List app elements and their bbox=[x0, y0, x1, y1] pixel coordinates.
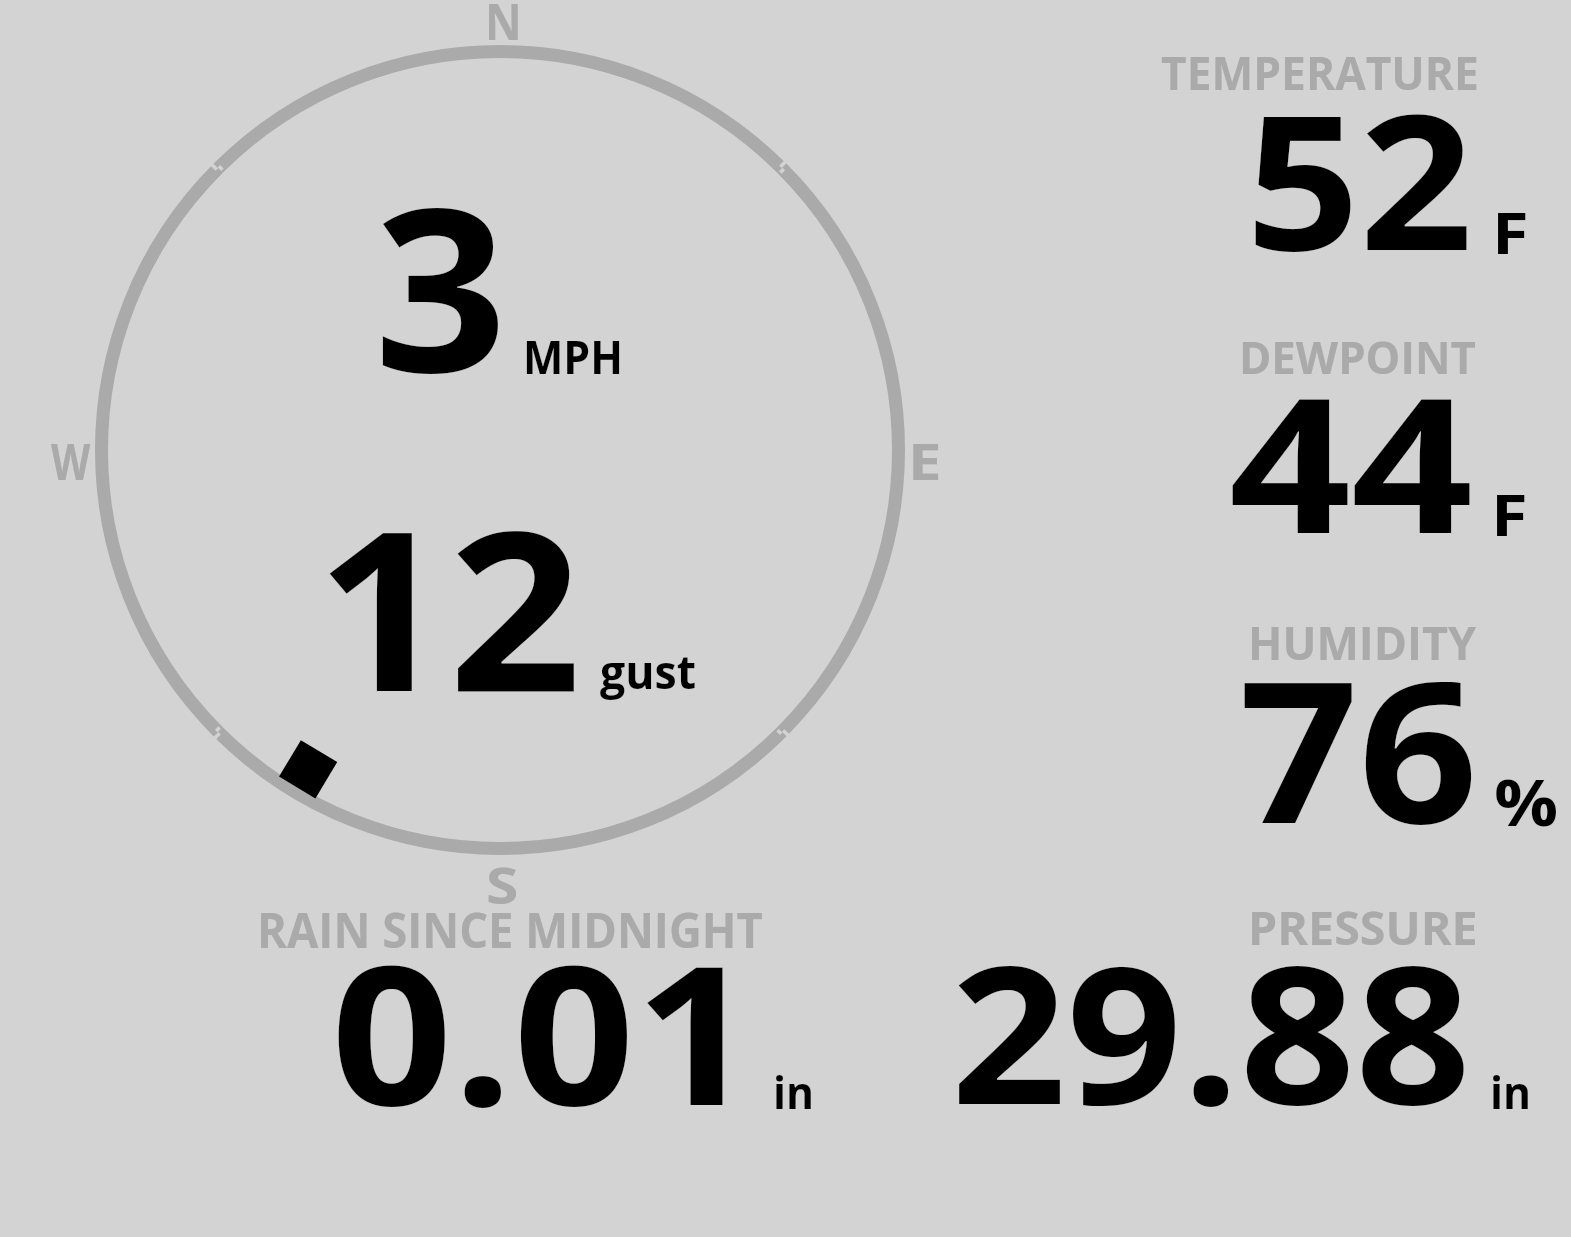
staticText: DEWPOINT bbox=[1239, 326, 1476, 387]
staticText: N bbox=[485, 0, 522, 55]
staticText: 12 bbox=[316, 455, 582, 755]
button[interactable]: Rain since midnight 0.01 inches bbox=[210, 880, 850, 1130]
staticText: F bbox=[1492, 193, 1530, 271]
button[interactable]: Humidity 76 percent bbox=[1000, 590, 1571, 860]
staticText: gust bbox=[600, 640, 696, 702]
staticText: 29.88 bbox=[951, 901, 1471, 1160]
button[interactable]: Wind compass: 3 miles per hour, gusting … bbox=[88, 38, 912, 862]
staticText: in bbox=[1490, 1061, 1532, 1122]
staticText: HUMIDITY bbox=[1248, 611, 1477, 674]
staticText: MPH bbox=[523, 325, 623, 388]
staticText: 44 bbox=[1229, 333, 1474, 588]
staticText: F bbox=[1491, 475, 1529, 553]
staticText: PRESSURE bbox=[1248, 896, 1478, 959]
staticText: 3 bbox=[374, 130, 507, 439]
staticText: W bbox=[51, 427, 91, 495]
staticText: E bbox=[908, 427, 943, 495]
staticText: 0.01 bbox=[331, 899, 757, 1161]
staticText: S bbox=[486, 851, 519, 919]
staticText: RAIN SINCE MIDNIGHT bbox=[257, 897, 763, 962]
staticText: in bbox=[773, 1061, 815, 1122]
button[interactable]: Pressure 29.88 inches bbox=[880, 880, 1571, 1130]
button[interactable]: Temperature 52 degrees Fahrenheit bbox=[1000, 20, 1571, 290]
staticText: 52 bbox=[1246, 50, 1474, 305]
button[interactable]: Dew point 44 degrees Fahrenheit bbox=[1000, 305, 1571, 575]
staticText: 76 bbox=[1239, 614, 1478, 880]
staticText: % bbox=[1494, 758, 1559, 845]
staticText: TEMPERATURE bbox=[1161, 41, 1480, 104]
